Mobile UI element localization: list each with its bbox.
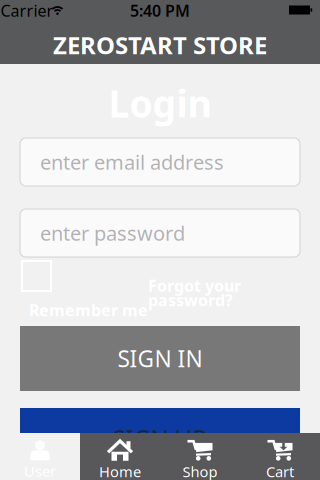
staticText: 5:40 PM — [130, 0, 190, 21]
staticText: Home — [99, 462, 141, 480]
button[interactable]: Remember me — [21, 260, 151, 314]
staticText: enter password — [40, 220, 185, 246]
staticText: User — [24, 461, 56, 480]
button[interactable]: Cart — [240, 433, 320, 480]
staticText: Forgot your — [148, 275, 241, 296]
button[interactable]: Forgot your — [148, 275, 252, 311]
button[interactable]: User — [0, 433, 80, 480]
staticText: password? — [148, 289, 233, 311]
staticText: SIGN IN — [117, 343, 202, 373]
staticText: SIGN UP — [112, 422, 207, 454]
staticText: Shop — [182, 462, 217, 480]
staticText: Remember me — [29, 299, 148, 321]
staticText: ZEROSTART STORE — [53, 29, 267, 61]
staticText: Carrier — [0, 0, 53, 21]
staticText: enter email address — [40, 149, 224, 175]
button[interactable]: enter email address — [20, 138, 300, 186]
button[interactable]: Home — [80, 433, 160, 480]
staticText: Login — [108, 78, 211, 128]
button[interactable]: enter password — [20, 209, 300, 257]
button[interactable]: SIGN IN — [20, 326, 300, 391]
button[interactable]: SIGN UP — [20, 408, 300, 473]
button[interactable]: Shop — [160, 433, 240, 480]
staticText: Cart — [266, 462, 294, 480]
